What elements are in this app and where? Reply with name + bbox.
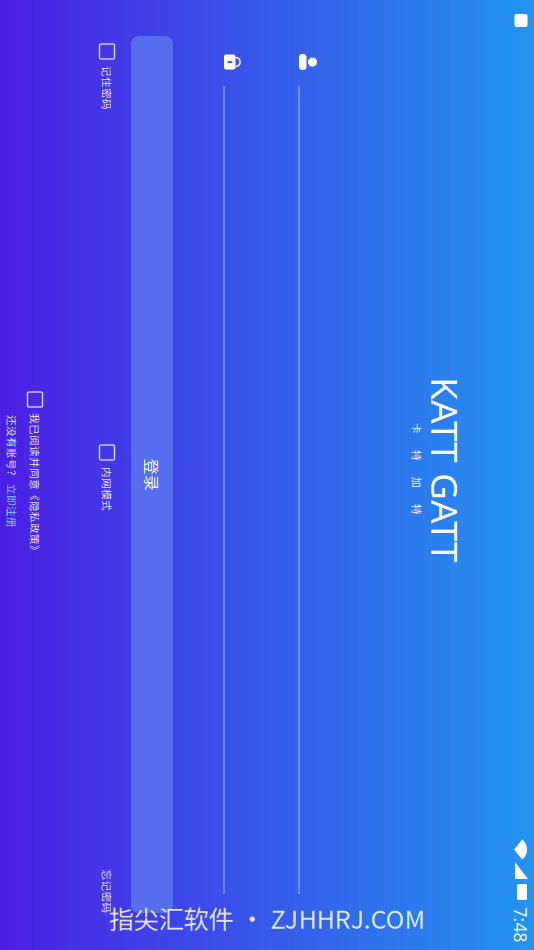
staticText: KATT GATT — [169, 271, 355, 322]
button[interactable]: 还没有账号？ — [207, 722, 367, 738]
staticText: 指尖汇软件 • ZJHHRJ.COM — [108, 899, 425, 936]
button[interactable]: 我已阅读并同意《隐私政策》 — [184, 699, 384, 715]
staticText: 内网模式 — [259, 627, 303, 643]
button[interactable]: 登录 — [0, 569, 534, 611]
staticText: 我已阅读并同意《隐私政策》 — [205, 699, 348, 715]
staticText: 立即注册 — [276, 722, 320, 738]
button[interactable]: 内网模式 — [237, 627, 347, 643]
staticText: 还没有账号？ — [207, 722, 273, 738]
staticText: 卡 特 加 特 — [215, 317, 307, 333]
